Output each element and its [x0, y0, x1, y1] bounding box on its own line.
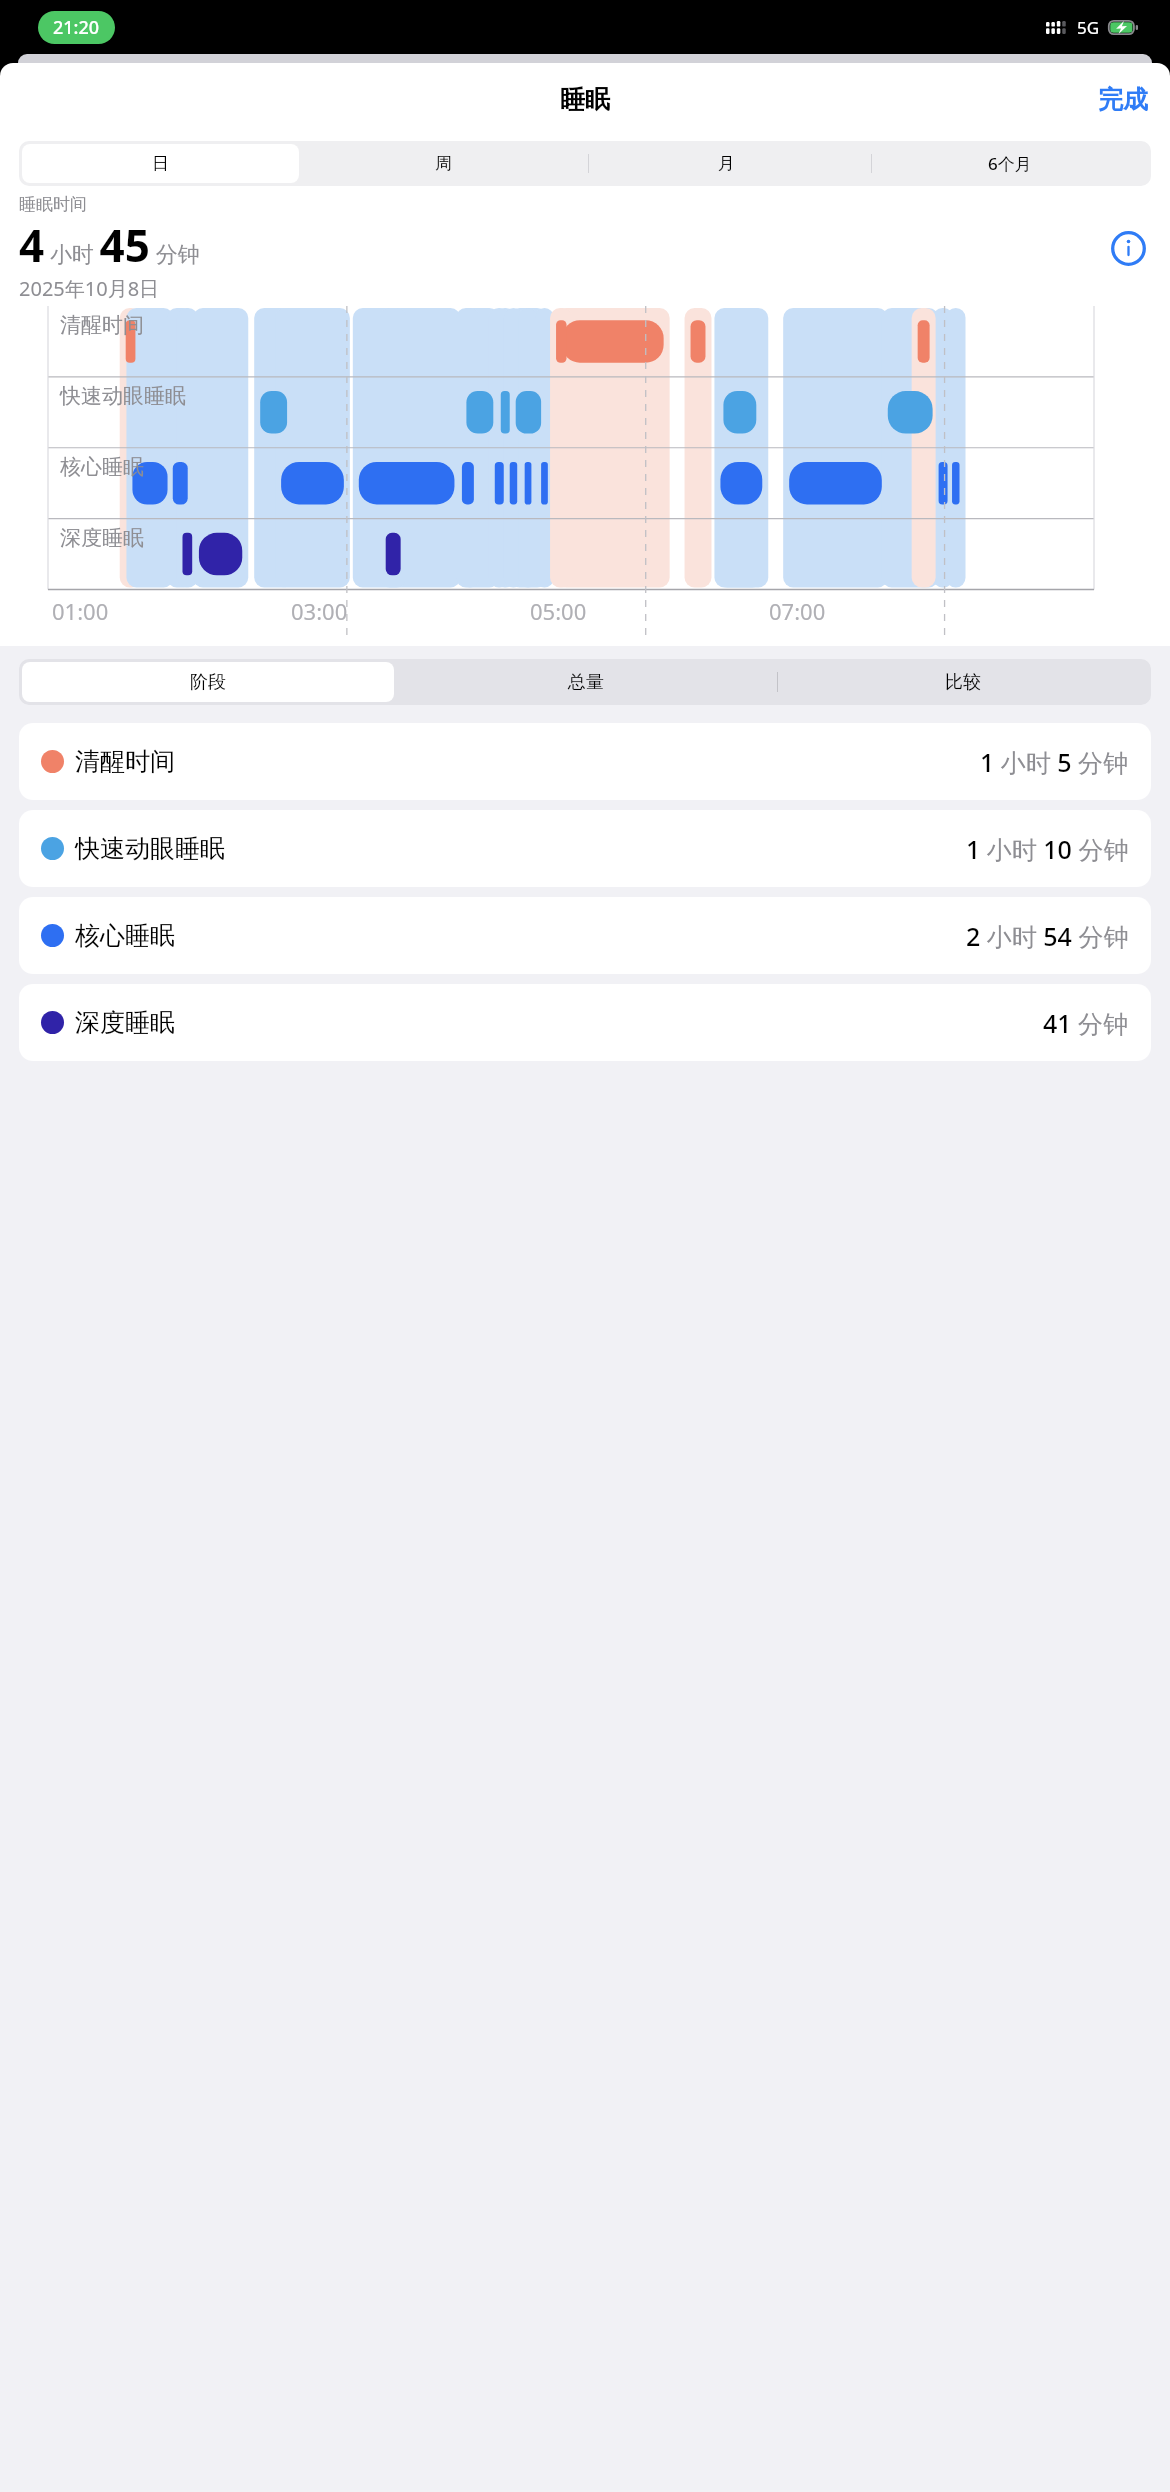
staticText: 21:20 [53, 15, 100, 40]
staticText: 07:00 [769, 596, 1151, 626]
button[interactable]: 周 [305, 144, 582, 183]
button[interactable]: 比较 [777, 662, 1148, 702]
staticText: 05:00 [530, 596, 769, 626]
staticText: 6个月 [988, 152, 1032, 175]
staticText: 深度睡眠 [75, 1007, 175, 1038]
button[interactable]: 快速动眼睡眠 [19, 810, 1151, 887]
staticText: 完成 [1098, 84, 1148, 115]
button[interactable]: 核心睡眠 [19, 897, 1151, 974]
staticText: 清醒时间 [75, 746, 175, 777]
button[interactable]: 日 [22, 144, 299, 183]
button[interactable]: 6个月 [871, 144, 1148, 183]
staticText: 月 [718, 153, 735, 174]
staticText: 清醒时间 [60, 312, 144, 338]
staticText: 快速动眼睡眠 [75, 833, 225, 864]
staticText: 周 [435, 153, 452, 174]
staticText: 深度睡眠 [60, 525, 144, 551]
button[interactable]: 21:20 [38, 11, 115, 44]
staticText: 1 小时 5 分钟 [980, 745, 1129, 779]
staticText: 日 [152, 153, 169, 174]
staticText: 快速动眼睡眠 [60, 383, 186, 409]
staticText: 01:00 [52, 596, 291, 626]
staticText: 睡眠 [560, 84, 610, 115]
staticText: 总量 [568, 671, 604, 694]
button[interactable]: 信息 [1105, 225, 1151, 271]
button[interactable]: 总量 [400, 662, 771, 702]
staticText: 阶段 [190, 671, 226, 694]
staticText: 41 分钟 [1043, 1006, 1129, 1040]
staticText: 比较 [945, 671, 981, 694]
button[interactable]: 清醒时间 [19, 723, 1151, 800]
staticText: 核心睡眠 [75, 920, 175, 951]
staticText: 睡眠时间 [19, 194, 87, 215]
staticText: 核心睡眠 [60, 454, 144, 480]
staticText: 03:00 [291, 596, 530, 626]
staticText: 1 小时 10 分钟 [966, 832, 1129, 866]
staticText: 2 小时 54 分钟 [966, 919, 1129, 953]
button[interactable]: 阶段 [22, 662, 394, 702]
button[interactable]: 完成 [1084, 76, 1162, 123]
staticText: 2025年10月8日 [19, 275, 160, 302]
staticText: 5G [1077, 16, 1100, 39]
button[interactable]: 月 [588, 144, 865, 183]
staticText: 4 小时 45 分钟 [19, 215, 200, 275]
button[interactable]: 深度睡眠 [19, 984, 1151, 1061]
